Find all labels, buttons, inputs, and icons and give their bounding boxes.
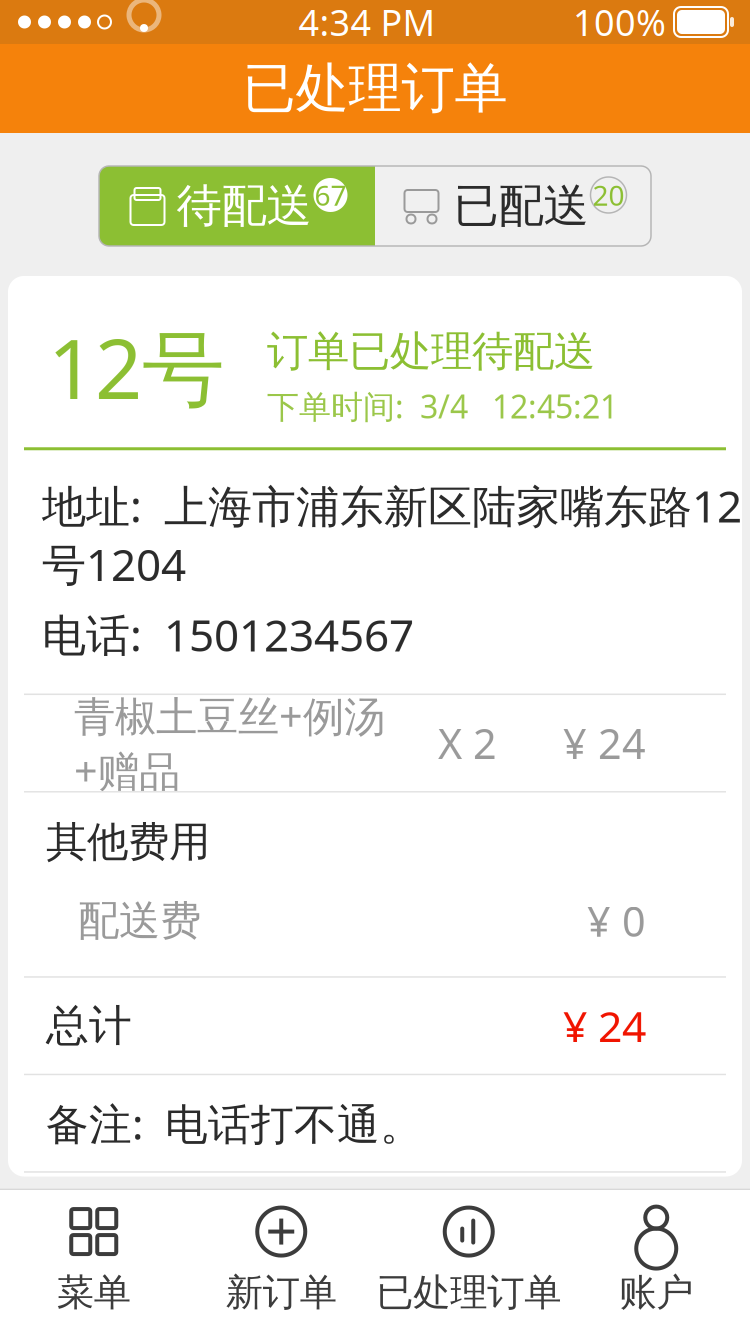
staticText: X 2 xyxy=(438,716,497,770)
staticText: 青椒土豆丝+例汤+赠品 xyxy=(74,688,385,798)
staticText: 100% xyxy=(573,0,666,46)
staticText: 新订单 xyxy=(226,1270,337,1315)
staticText: 下单时间: 3/4 12:45:21 xyxy=(267,385,618,427)
staticText: 其他费用 xyxy=(46,817,210,867)
staticText: 4:34 PM xyxy=(298,0,435,46)
button[interactable]: 新订单 xyxy=(187,1190,375,1330)
staticText: 已处理订单 xyxy=(242,56,507,121)
button[interactable]: 菜单 xyxy=(0,1190,187,1330)
staticText: ¥ 0 xyxy=(587,893,646,948)
staticText: 标记餐已送出 xyxy=(222,1219,528,1281)
staticText: 菜单 xyxy=(57,1270,131,1315)
button[interactable]: 待配送 xyxy=(99,166,375,246)
button[interactable]: 已配送 xyxy=(375,166,651,246)
staticText: 12号 xyxy=(48,312,225,422)
staticText: 电话: 1501234567 xyxy=(42,605,414,663)
button[interactable]: 标记餐已送出 xyxy=(188,1201,562,1299)
staticText: 账户 xyxy=(619,1270,693,1315)
staticText: 地址: 上海市浦东新区陆家嘴东路12号1204 xyxy=(42,476,742,593)
staticText: 20 xyxy=(592,176,624,214)
staticText: 已配送 xyxy=(453,178,588,234)
staticText: 67 xyxy=(314,176,346,214)
staticText: 备注: 电话打不通。 xyxy=(46,1095,423,1152)
staticText: 配送费 xyxy=(78,895,201,946)
button[interactable]: 账户 xyxy=(562,1190,750,1330)
button[interactable]: 已处理订单 xyxy=(375,1190,562,1330)
staticText: 订单已处理待配送 xyxy=(267,326,595,377)
staticText: ¥ 24 xyxy=(563,997,646,1054)
staticText: 已处理订单 xyxy=(376,1270,561,1315)
staticText: ¥ 24 xyxy=(563,716,646,770)
staticText: 总计 xyxy=(46,999,132,1052)
staticText: 待配送 xyxy=(176,178,311,234)
